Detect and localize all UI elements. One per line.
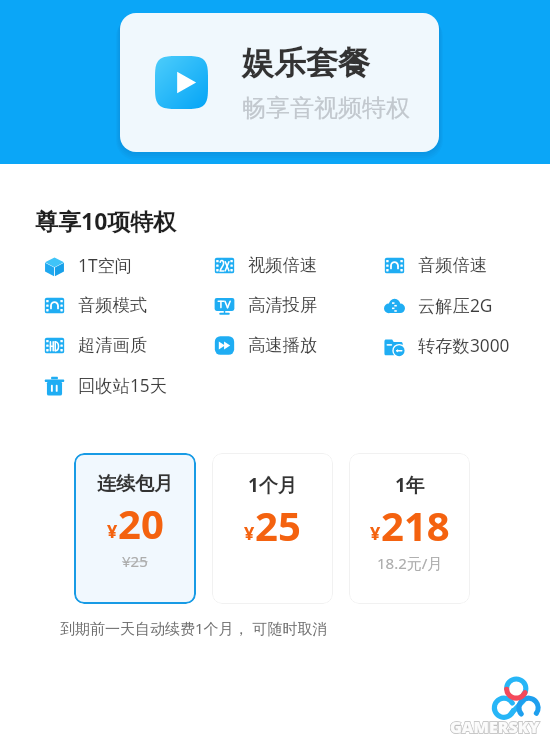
staticText: ¥25 xyxy=(122,551,148,571)
staticText: 视频倍速 xyxy=(248,254,318,276)
button[interactable]: 1年 xyxy=(349,453,470,604)
staticText: 高速播放 xyxy=(248,334,318,356)
button[interactable]: 高清投屏 xyxy=(214,294,384,316)
staticText: 25 xyxy=(255,498,301,552)
staticText: GAMERSKY xyxy=(450,716,540,738)
button[interactable]: 视频倍速 xyxy=(214,254,384,276)
button[interactable]: 超清画质 xyxy=(44,334,214,356)
staticText: 超清画质 xyxy=(78,334,148,356)
button[interactable]: 1个月 xyxy=(212,453,333,604)
button[interactable]: 音频倍速 xyxy=(384,254,550,276)
staticText: GAMERSKY xyxy=(450,716,540,738)
button[interactable]: 转存数3000 xyxy=(384,334,550,358)
button[interactable]: Play xyxy=(120,13,439,152)
staticText: 回收站15天 xyxy=(78,374,167,398)
button[interactable]: 高速播放 xyxy=(214,334,384,356)
staticText: ¥ xyxy=(107,519,118,544)
staticText: 转存数3000 xyxy=(418,334,510,358)
button[interactable]: 回收站15天 xyxy=(44,374,214,398)
staticText: 音频模式 xyxy=(78,294,148,316)
button[interactable]: 音频模式 xyxy=(44,294,214,316)
button[interactable]: 云解压2G xyxy=(384,294,550,318)
staticText: 20 xyxy=(118,496,164,550)
staticText: 218 xyxy=(381,498,450,552)
staticText: 到期前一天自动续费1个月， 可随时取消 xyxy=(60,618,328,638)
staticText: 连续包月 xyxy=(97,472,173,496)
staticText: 云解压2G xyxy=(418,294,493,318)
staticText: ¥ xyxy=(370,521,381,546)
staticText: 1个月 xyxy=(248,472,297,498)
staticText: 1T空间 xyxy=(78,254,133,278)
button[interactable]: 连续包月 xyxy=(74,453,196,604)
staticText: 1年 xyxy=(395,472,425,498)
staticText: 尊享10项特权 xyxy=(35,205,177,236)
staticText: 音频倍速 xyxy=(418,254,488,276)
staticText: 18.2元/月 xyxy=(377,553,443,573)
staticText: 高清投屏 xyxy=(248,294,318,316)
staticText: 娱乐套餐 xyxy=(242,43,370,83)
staticText: 畅享音视频特权 xyxy=(242,93,410,123)
other: Play xyxy=(155,56,208,109)
staticText: ¥ xyxy=(244,521,255,546)
button[interactable]: 1T空间 xyxy=(44,254,214,278)
